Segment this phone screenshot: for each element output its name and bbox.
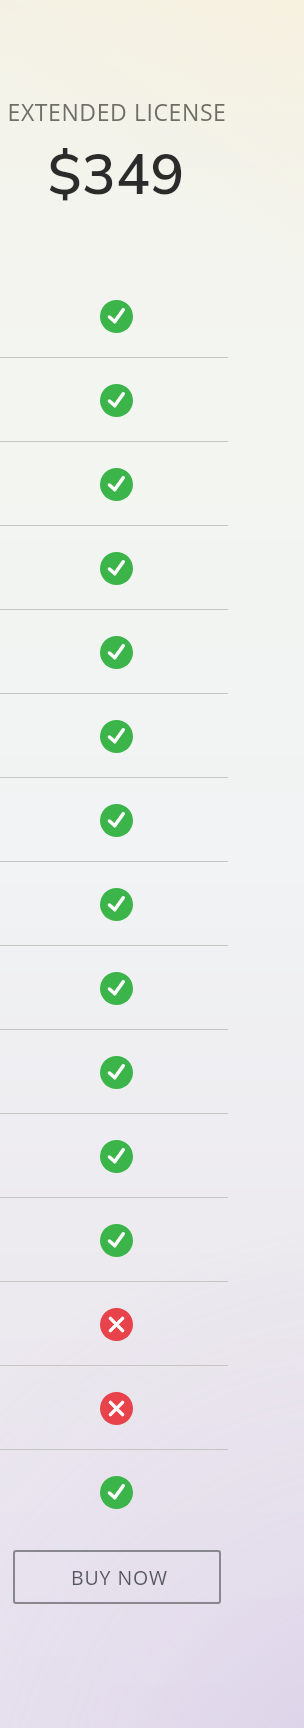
other: Included (100, 552, 133, 585)
other: Included (100, 888, 133, 921)
staticText: $349 (2, 136, 230, 214)
button[interactable]: Included (0, 274, 228, 358)
other: Included (100, 972, 133, 1005)
other: Included (100, 720, 133, 753)
button[interactable]: Included (0, 946, 228, 1030)
button[interactable]: Included (0, 1450, 228, 1534)
other: Included (100, 636, 133, 669)
other: Not included (100, 1308, 133, 1341)
button[interactable]: Included (0, 862, 228, 946)
other: Included (100, 1056, 133, 1089)
other: Included (100, 804, 133, 837)
button[interactable]: Included (0, 442, 228, 526)
other: Included (100, 1224, 133, 1257)
button[interactable]: Included (0, 1114, 228, 1198)
button[interactable]: Included (0, 778, 228, 862)
button[interactable]: Included (0, 1198, 228, 1282)
button[interactable]: Not included (0, 1282, 228, 1366)
other: Included (100, 384, 133, 417)
button[interactable]: Included (0, 526, 228, 610)
button[interactable]: Included (0, 358, 228, 442)
staticText: BUY NOW (71, 1564, 168, 1591)
other: Included (100, 1476, 133, 1509)
staticText: EXTENDED LICENSE (3, 96, 231, 127)
other: Not included (100, 1392, 133, 1425)
button[interactable]: Included (0, 610, 228, 694)
button[interactable]: Included (0, 1030, 228, 1114)
other: Included (100, 1140, 133, 1173)
other: Included (100, 468, 133, 501)
button[interactable]: Not included (0, 1366, 228, 1450)
button[interactable]: BUY NOW (13, 1550, 221, 1604)
button[interactable]: Included (0, 694, 228, 778)
other: Included (100, 300, 133, 333)
